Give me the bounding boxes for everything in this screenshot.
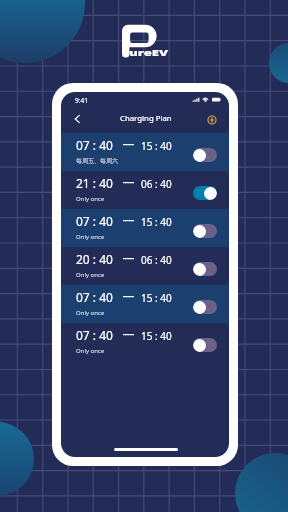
button[interactable]: 21 : 40 xyxy=(61,171,229,209)
staticText: Only once xyxy=(76,233,105,241)
staticText: 15 : 40 xyxy=(141,329,172,343)
staticText: Only once xyxy=(76,271,105,279)
button[interactable]: Plan disabled xyxy=(193,148,217,162)
button[interactable]: 07 : 40 xyxy=(61,209,229,247)
button[interactable]: Plan disabled xyxy=(193,224,217,238)
staticText: 07 : 40 xyxy=(76,327,113,343)
button[interactable]: Plan enabled xyxy=(193,186,217,200)
staticText: 15 : 40 xyxy=(141,139,172,153)
button[interactable]: 07 : 40 xyxy=(61,323,229,361)
staticText: 20 : 40 xyxy=(76,251,113,267)
staticText: Only once xyxy=(76,347,105,355)
staticText: 07 : 40 xyxy=(76,137,113,153)
button[interactable]: Back xyxy=(70,111,86,127)
staticText: 15 : 40 xyxy=(141,215,172,229)
staticText: ureEV xyxy=(129,46,168,58)
staticText: 21 : 40 xyxy=(76,175,113,191)
staticText: 07 : 40 xyxy=(76,213,113,229)
staticText: 07 : 40 xyxy=(76,289,113,305)
button[interactable]: Add charging plan xyxy=(205,113,219,127)
button[interactable]: 20 : 40 xyxy=(61,247,229,285)
staticText: 06 : 40 xyxy=(141,253,172,267)
button[interactable]: Plan disabled xyxy=(193,300,217,314)
staticText: Charging Plan xyxy=(120,113,172,124)
staticText: 每周五、每周六 xyxy=(76,157,118,165)
staticText: Only once xyxy=(76,195,105,203)
staticText: 06 : 40 xyxy=(141,177,172,191)
button[interactable]: 07 : 40 xyxy=(61,285,229,323)
staticText: 15 : 40 xyxy=(141,291,172,305)
button[interactable]: 07 : 40 xyxy=(61,133,229,171)
staticText: Only once xyxy=(76,309,105,317)
button[interactable]: Plan disabled xyxy=(193,262,217,276)
button[interactable]: Plan disabled xyxy=(193,338,217,352)
staticText: 9:41 xyxy=(75,96,88,105)
